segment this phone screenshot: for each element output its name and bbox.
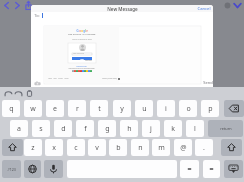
button[interactable]: Undo <box>3 88 14 99</box>
staticText: u <box>142 104 147 114</box>
staticText: z <box>31 143 35 153</box>
button[interactable]: e <box>46 100 64 117</box>
button[interactable]: n <box>131 139 149 156</box>
staticText: n <box>138 143 143 153</box>
staticText: One Google Account for everything Google <box>68 68 95 70</box>
staticText: e <box>86 29 88 33</box>
staticText: d <box>61 124 66 134</box>
staticText: Privacy <box>58 78 63 80</box>
staticText: New Message <box>107 6 138 12</box>
button[interactable]: b <box>109 139 127 156</box>
button[interactable]: Share <box>23 0 34 11</box>
button[interactable]: w <box>24 100 42 117</box>
staticText: To: <box>34 13 40 18</box>
staticText: Enter your email <box>73 53 84 55</box>
staticText: y <box>120 104 124 114</box>
button[interactable]: Period <box>203 160 220 178</box>
button[interactable]: o <box>179 100 197 117</box>
button[interactable]: Dictate <box>44 160 63 178</box>
staticText: Terms <box>64 78 69 80</box>
button[interactable]: j <box>142 120 160 137</box>
staticText: b <box>116 143 121 153</box>
button[interactable]: y <box>113 100 131 117</box>
staticText: About <box>48 78 52 80</box>
button[interactable]: v <box>88 139 106 156</box>
button[interactable]: s <box>32 120 50 137</box>
staticText: o <box>81 29 83 33</box>
staticText: h <box>127 124 132 134</box>
button[interactable]: Back <box>1 0 12 11</box>
button[interactable]: Hide toolbar <box>232 0 243 11</box>
button[interactable]: Cancel <box>195 5 213 12</box>
staticText: j <box>150 124 152 134</box>
button[interactable]: Send <box>201 79 213 86</box>
staticText: g <box>105 124 110 134</box>
button[interactable]: m <box>152 139 170 156</box>
staticText: Send <box>203 80 213 85</box>
staticText: Create account <box>76 65 87 67</box>
button[interactable]: q <box>2 100 20 117</box>
staticText: v <box>95 143 99 153</box>
button[interactable]: p <box>201 100 219 117</box>
staticText: p <box>208 104 213 114</box>
staticText: Cancel <box>197 6 211 11</box>
staticText: x <box>52 143 56 153</box>
button[interactable]: d <box>54 120 72 137</box>
staticText: . <box>203 143 205 153</box>
button[interactable]: Shift <box>2 139 23 156</box>
staticText: One account. All of Google. <box>68 33 96 36</box>
button[interactable]: Change keyboard <box>24 160 41 178</box>
button[interactable]: r <box>68 100 86 117</box>
button[interactable]: l <box>186 120 204 137</box>
button[interactable]: t <box>90 100 108 117</box>
button[interactable]: Stop <box>222 0 233 11</box>
staticText: e <box>53 104 57 114</box>
button[interactable]: a <box>10 120 28 137</box>
button[interactable]: Backspace <box>224 100 244 117</box>
button[interactable]: f <box>76 120 94 137</box>
staticText: g <box>83 29 85 33</box>
button[interactable]: Next <box>72 57 92 60</box>
staticText: q <box>9 104 14 114</box>
button[interactable]: x <box>45 139 63 156</box>
button[interactable]: . <box>195 139 213 156</box>
button[interactable]: g <box>98 120 116 137</box>
staticText: k <box>171 124 175 134</box>
staticText: w <box>30 104 36 114</box>
staticText: Sign in to continue to Gmail <box>72 38 92 40</box>
button[interactable]: i <box>157 100 175 117</box>
staticText: o <box>186 104 191 114</box>
button[interactable]: Comma <box>180 160 199 178</box>
staticText: G <box>76 29 79 33</box>
staticText: English (United States) <box>102 78 117 80</box>
button[interactable]: Hide keyboard <box>224 160 243 178</box>
button[interactable]: u <box>135 100 153 117</box>
staticText: @ <box>180 143 187 153</box>
staticText: Need help? <box>85 60 92 62</box>
staticText: a <box>17 124 21 134</box>
staticText: o <box>79 29 81 33</box>
staticText: r <box>76 104 79 114</box>
staticText: i <box>165 104 167 114</box>
staticText: l <box>85 29 86 33</box>
button[interactable]: z <box>24 139 42 156</box>
button[interactable]: Forward <box>12 0 23 11</box>
button[interactable]: Paste <box>24 88 35 99</box>
staticText: .?123 <box>7 167 16 172</box>
button[interactable]: c <box>67 139 85 156</box>
staticText: Help <box>53 78 57 80</box>
staticText: m <box>158 143 165 153</box>
button[interactable]: k <box>164 120 182 137</box>
button[interactable]: @ <box>174 139 192 156</box>
button[interactable]: return <box>208 120 243 137</box>
button[interactable]: .?123 <box>2 160 21 178</box>
staticText: Next <box>80 58 84 60</box>
staticText: t <box>98 104 101 114</box>
staticText: s <box>39 124 43 134</box>
staticText: f <box>84 124 87 134</box>
button[interactable]: Redo <box>13 88 24 99</box>
button[interactable]: h <box>120 120 138 137</box>
button[interactable]: Insert photo <box>34 80 41 87</box>
button[interactable]: Shift <box>221 139 242 156</box>
